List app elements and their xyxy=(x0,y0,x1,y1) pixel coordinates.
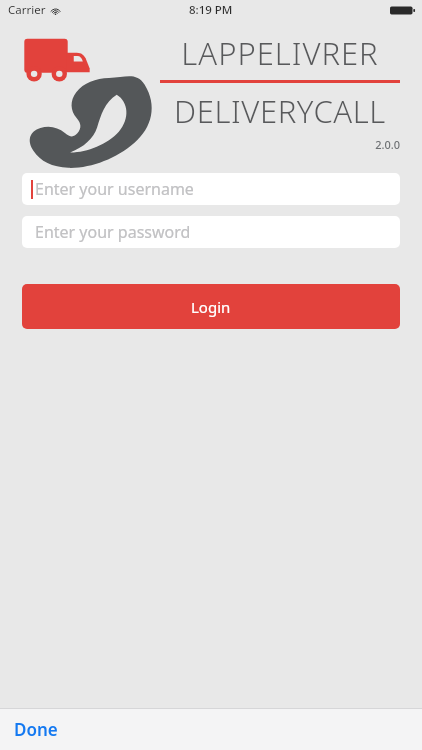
button[interactable]: Done xyxy=(0,710,72,749)
staticText: 8:19 PM xyxy=(189,2,233,18)
staticText: Enter your username xyxy=(35,178,194,200)
staticText: Carrier xyxy=(8,2,46,18)
staticText: Login xyxy=(191,297,231,317)
button[interactable]: Enter your password xyxy=(22,216,400,248)
staticText: Done xyxy=(14,718,58,741)
staticText: Enter your password xyxy=(35,221,191,243)
staticText: 2.0.0 xyxy=(160,137,400,152)
staticText: DELIVERYCALL xyxy=(160,90,400,132)
button[interactable]: Login xyxy=(22,284,400,329)
staticText: LAPPELIVRER xyxy=(160,32,400,74)
button[interactable]: Enter your username xyxy=(22,173,400,205)
